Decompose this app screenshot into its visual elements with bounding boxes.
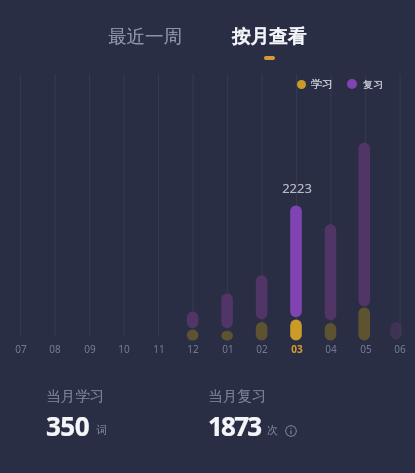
staticText: 10 (118, 342, 130, 356)
staticText: 按月查看 (232, 25, 306, 48)
staticText: 06 (394, 342, 406, 356)
staticText: 08 (49, 342, 61, 356)
staticText: 当月学习 (46, 387, 105, 405)
staticText: 最近一周 (108, 25, 182, 48)
staticText: 09 (84, 342, 96, 356)
staticText: 07 (15, 342, 27, 356)
staticText: 复习 (363, 78, 383, 91)
staticText: 12 (187, 342, 199, 356)
staticText: 11 (153, 342, 165, 356)
staticText: 03 (291, 342, 303, 356)
button[interactable]: 按月查看 (221, 0, 317, 62)
staticText: 05 (360, 342, 372, 356)
staticText: 04 (325, 342, 337, 356)
button[interactable]: More information (285, 425, 297, 437)
staticText: 学习 (311, 77, 333, 91)
staticText: 02 (256, 342, 268, 356)
staticText: 2223 (282, 179, 312, 197)
staticText: 350 (46, 408, 90, 443)
staticText: 词 (96, 423, 107, 437)
staticText: 次 (267, 423, 278, 437)
button[interactable]: 最近一周 (97, 0, 193, 62)
staticText: 01 (222, 342, 234, 356)
staticText: 当月复习 (208, 387, 267, 405)
staticText: 1873 (208, 408, 261, 443)
